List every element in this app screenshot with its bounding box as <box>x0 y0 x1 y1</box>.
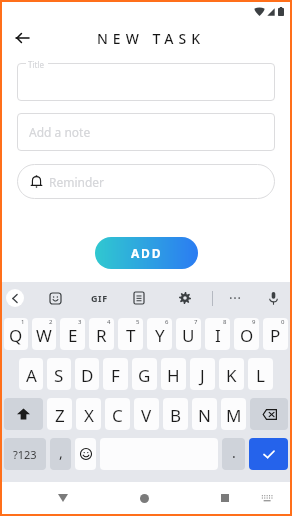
button[interactable]: B <box>163 398 188 430</box>
button[interactable]: S <box>47 358 71 390</box>
staticText: E <box>68 324 78 347</box>
staticText: ?123 <box>13 447 37 462</box>
button[interactable]: ADD <box>95 237 198 269</box>
button[interactable]: Enter <box>249 438 288 470</box>
button[interactable]: D <box>75 358 99 390</box>
button[interactable]: E <box>60 318 85 350</box>
button[interactable]: Backspace <box>250 398 288 430</box>
button[interactable]: O <box>234 318 259 350</box>
staticText: 7 <box>194 318 198 326</box>
staticText: T <box>126 324 136 347</box>
staticText: R <box>96 324 107 347</box>
staticText: , <box>59 443 63 462</box>
staticText: Y <box>155 324 165 347</box>
button[interactable]: Recent apps <box>212 485 238 511</box>
staticText: ADD <box>131 245 163 261</box>
staticText: 4 <box>107 318 111 326</box>
button[interactable]: G <box>132 358 157 390</box>
button[interactable]: Y <box>147 318 172 350</box>
button[interactable]: W <box>32 318 56 350</box>
button[interactable]: Reminder <box>17 164 275 199</box>
staticText: GIF <box>91 292 108 304</box>
staticText: W <box>36 324 52 347</box>
button[interactable]: V <box>134 398 159 430</box>
staticText: H <box>167 364 180 387</box>
staticText: Q <box>9 324 23 347</box>
button[interactable]: F <box>103 358 128 390</box>
button[interactable]: U <box>176 318 201 350</box>
button[interactable]: Q <box>4 318 28 350</box>
button[interactable]: ?123 <box>4 438 46 470</box>
staticText: G <box>138 364 151 387</box>
staticText: Add a note <box>29 124 91 140</box>
button[interactable]: H <box>161 358 186 390</box>
staticText: P <box>270 324 281 347</box>
button[interactable]: J <box>190 358 215 390</box>
staticText: 1 <box>21 318 25 326</box>
staticText: A <box>26 364 37 387</box>
staticText: NEW TASK <box>97 29 206 48</box>
staticText: Z <box>55 404 65 427</box>
button[interactable]: N <box>192 398 217 430</box>
staticText: S <box>54 364 64 387</box>
staticText: X <box>84 404 94 427</box>
button[interactable]: Close toolbar <box>6 289 24 307</box>
staticText: N <box>198 404 211 427</box>
button[interactable]: Back <box>50 485 76 511</box>
button[interactable]: K <box>219 358 244 390</box>
button[interactable]: Hide keyboard <box>257 488 277 508</box>
button[interactable]: Stickers <box>44 286 66 310</box>
button[interactable]: M <box>221 398 246 430</box>
staticText: F <box>111 364 120 387</box>
button[interactable]: Z <box>47 398 72 430</box>
button[interactable]: GIF <box>87 286 111 310</box>
button[interactable]: L <box>248 358 273 390</box>
button[interactable]: . <box>222 438 245 470</box>
staticText: Reminder <box>49 174 105 190</box>
staticText: 8 <box>223 318 227 326</box>
button[interactable]: I <box>205 318 230 350</box>
staticText: C <box>112 404 123 427</box>
staticText: K <box>226 364 237 387</box>
staticText: 5 <box>136 318 140 326</box>
button[interactable]: A <box>19 358 43 390</box>
button[interactable]: R <box>89 318 114 350</box>
button[interactable]: More options <box>224 286 246 310</box>
button[interactable]: C <box>105 398 130 430</box>
button[interactable]: T <box>118 318 143 350</box>
staticText: V <box>141 404 152 427</box>
staticText: 6 <box>165 318 169 326</box>
staticText: O <box>240 324 254 347</box>
button[interactable]: Clipboard <box>128 286 150 310</box>
button[interactable]: Shift <box>4 398 43 430</box>
button[interactable]: Back <box>7 23 37 53</box>
staticText: 0 <box>281 318 285 326</box>
button[interactable]: X <box>76 398 101 430</box>
staticText: 2 <box>49 318 53 326</box>
staticText: I <box>215 324 221 347</box>
button[interactable]: Emoji <box>75 438 96 470</box>
staticText: U <box>182 324 195 347</box>
staticText: B <box>170 404 182 427</box>
staticText: M <box>226 404 242 427</box>
button[interactable]: Voice input <box>262 286 284 310</box>
staticText: 9 <box>252 318 256 326</box>
staticText: Title <box>28 59 44 70</box>
button[interactable]: P <box>263 318 288 350</box>
staticText: L <box>256 364 265 387</box>
button[interactable]: , <box>50 438 71 470</box>
button[interactable]: Add a note <box>17 113 275 151</box>
staticText: D <box>81 364 94 387</box>
button[interactable]: Home <box>131 485 157 511</box>
staticText: 3 <box>78 318 82 326</box>
staticText: J <box>200 364 205 387</box>
staticText: . <box>232 443 236 462</box>
button[interactable]: Settings <box>174 286 196 310</box>
